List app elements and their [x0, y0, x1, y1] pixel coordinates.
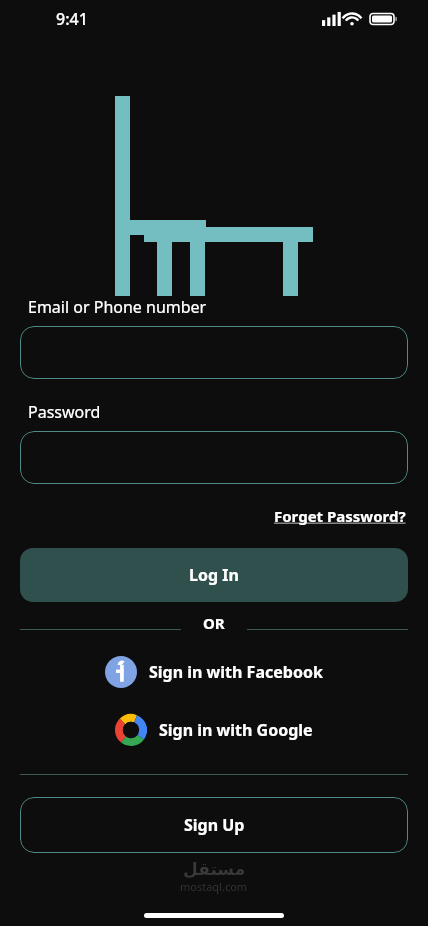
button[interactable]: Log In: [20, 548, 408, 602]
staticText: Sign in with Facebook: [149, 661, 323, 683]
button[interactable]: [20, 431, 408, 484]
staticText: OR: [203, 613, 225, 633]
staticText: Email or Phone number: [28, 296, 207, 318]
button[interactable]: [20, 326, 408, 379]
button[interactable]: Forget Password?: [272, 502, 408, 530]
staticText: Password: [28, 401, 101, 423]
staticText: Sign Up: [184, 814, 245, 836]
staticText: Sign in with Google: [159, 719, 313, 741]
staticText: Log In: [189, 564, 239, 586]
staticText: 9:41: [56, 8, 88, 30]
button[interactable]: Sign Up: [20, 797, 408, 853]
staticText: mostaql.com: [180, 879, 248, 894]
button[interactable]: Sign in with Facebook: [95, 650, 333, 694]
staticText: Forget Password?: [274, 506, 406, 526]
staticText: مستقل: [183, 859, 246, 879]
button[interactable]: Sign in with Google: [105, 708, 323, 752]
